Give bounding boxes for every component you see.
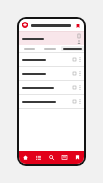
button[interactable]: Library [32,151,45,164]
other: More options [79,99,81,104]
button[interactable]: More options [19,53,84,66]
button[interactable] [60,45,84,52]
button[interactable]: News [58,151,71,164]
other: More options [79,57,81,62]
button[interactable] [39,45,60,52]
button[interactable] [19,45,39,52]
other: More options [79,85,81,90]
button[interactable]: Home [19,151,32,164]
button[interactable]: More options [19,81,84,94]
other: Documents [77,34,81,38]
button[interactable]: Saved [71,151,84,164]
button[interactable]: More options [19,67,84,80]
other: Account [77,40,81,44]
other: More options [79,71,81,76]
button[interactable]: Documents [19,32,84,45]
button[interactable]: More options [19,95,84,108]
button[interactable]: Bookmarks [74,22,81,29]
button[interactable]: Search [45,151,58,164]
